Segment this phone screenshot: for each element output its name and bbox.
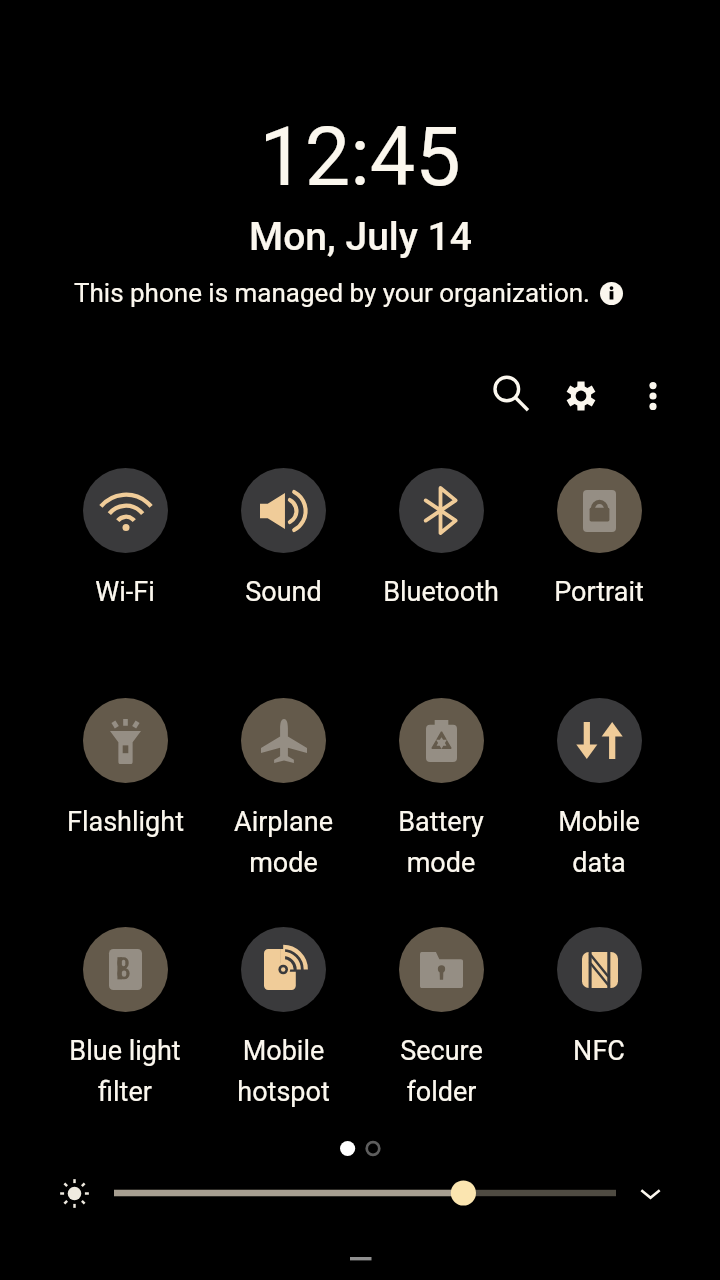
staticText: Blue light filter: [69, 1035, 181, 1108]
button[interactable]: Airplane mode: [204, 698, 362, 879]
staticText: This phone is managed by your organizati…: [74, 278, 590, 308]
button[interactable]: Search: [484, 367, 536, 419]
button[interactable]: Expand: [627, 1170, 673, 1216]
button[interactable]: Secure folder: [362, 927, 520, 1108]
staticText: Mobile data: [558, 806, 640, 879]
staticText: Airplane mode: [234, 806, 333, 879]
staticText: Sound: [245, 576, 322, 608]
button[interactable]: Settings: [555, 370, 607, 422]
staticText: Flashlight: [67, 806, 184, 838]
staticText: Bluetooth: [383, 576, 499, 608]
button[interactable]: Battery mode: [362, 698, 520, 879]
other: Brightness icon: [52, 1171, 96, 1215]
button[interactable]: Wi-Fi: [46, 468, 204, 608]
button[interactable]: NFC: [520, 927, 678, 1067]
button[interactable]: Portrait: [520, 468, 678, 608]
staticText: Mon, July 14: [249, 214, 472, 260]
staticText: Mobile hotspot: [237, 1035, 330, 1108]
button[interactable]: Mobile hotspot: [204, 927, 362, 1108]
button[interactable]: Bluetooth: [362, 468, 520, 608]
staticText: Portrait: [554, 576, 644, 608]
button[interactable]: Brightness: [114, 1170, 616, 1216]
button[interactable]: Learn more: [598, 280, 624, 306]
staticText: 12:45: [259, 110, 461, 205]
button[interactable]: Flashlight: [46, 698, 204, 838]
staticText: Wi-Fi: [95, 576, 155, 608]
staticText: Battery mode: [398, 806, 484, 879]
button[interactable]: Blue light filter: [46, 927, 204, 1108]
button[interactable]: Sound: [204, 468, 362, 608]
button[interactable]: More options: [627, 370, 679, 422]
button[interactable]: Mobile data: [520, 698, 678, 879]
staticText: NFC: [573, 1035, 625, 1067]
staticText: Secure folder: [400, 1035, 483, 1108]
